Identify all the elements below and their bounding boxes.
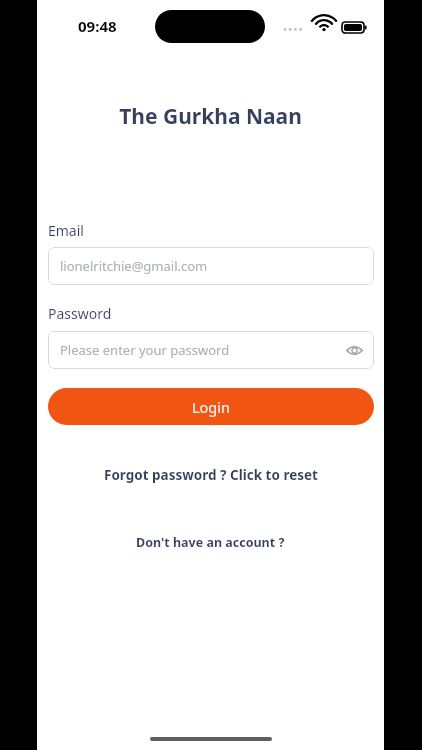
button[interactable]: Login (48, 388, 374, 425)
staticText: Please enter your password (60, 341, 230, 359)
staticText: Don't have an account ? (136, 534, 285, 551)
button[interactable]: Don't have an account ? (37, 530, 384, 554)
button[interactable]: Password input (48, 331, 374, 369)
staticText: lionelritchie@gmail.com (60, 257, 208, 275)
staticText: Password (48, 304, 112, 323)
staticText: Email (48, 221, 84, 240)
staticText: The Gurkha Naan (37, 102, 384, 131)
button[interactable]: Forgot password ? Click to reset (37, 462, 384, 488)
staticText: Forgot password ? Click to reset (104, 466, 318, 484)
staticText: 09:48 (78, 16, 117, 36)
staticText: Login (192, 397, 230, 417)
button[interactable]: Show password (342, 338, 366, 362)
button[interactable]: Email input (48, 247, 374, 285)
